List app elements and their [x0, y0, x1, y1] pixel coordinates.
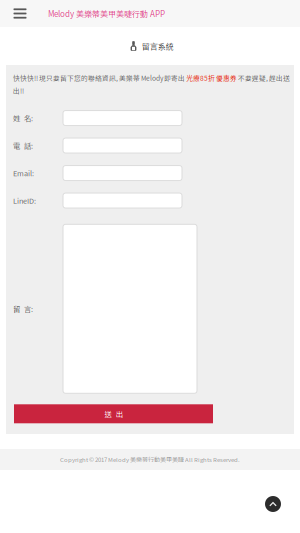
staticText: Copyright © 2017 Melody 美樂蒂行動美甲美睫 All Ri…	[60, 455, 240, 464]
button[interactable]: Back to top	[265, 496, 281, 512]
staticText: 姓 名:	[13, 113, 33, 123]
button[interactable]: 電 話:	[13, 132, 294, 159]
staticText: 留 言:	[13, 303, 33, 314]
staticText: 留言系統	[142, 40, 174, 52]
button[interactable]: Email:	[13, 159, 294, 187]
button[interactable]: LineID:	[13, 187, 294, 214]
staticText: Melody 美樂蒂美甲美睫行動 APP	[48, 8, 165, 19]
staticText: 快快快!! 現只要留下您的聯絡資訊, 美樂蒂 Melody 即寄出	[13, 73, 186, 83]
staticText: LineID:	[13, 195, 36, 206]
button[interactable]: 姓 名:	[13, 104, 294, 132]
staticText: 電 話:	[13, 140, 33, 151]
staticText: 送 出	[104, 408, 122, 419]
staticText: 出!!	[13, 86, 24, 95]
button[interactable]: Menu	[0, 0, 40, 27]
button[interactable]: 送 出	[14, 404, 213, 423]
staticText: 光療85折 優惠券	[186, 73, 237, 83]
button[interactable]: Melody 美樂蒂美甲美睫行動 APP	[40, 0, 165, 27]
staticText: Email:	[13, 168, 34, 178]
staticText: 不要遲疑, 趕出送	[237, 73, 290, 83]
